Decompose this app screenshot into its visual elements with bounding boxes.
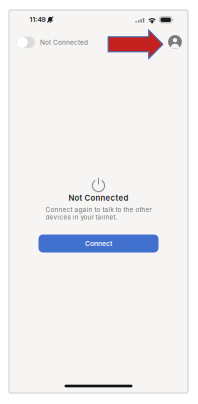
button[interactable]: Not Connected — [10, 31, 94, 54]
button[interactable]: Connect — [38, 234, 158, 252]
button[interactable]: Account — [163, 30, 187, 54]
staticText: 11:49 — [30, 15, 46, 24]
staticText: Not Connected — [40, 38, 88, 46]
staticText: Connect again to talk to the other devic… — [45, 206, 151, 221]
staticText: Not Connected — [68, 193, 128, 203]
staticText: Connect — [85, 239, 112, 248]
